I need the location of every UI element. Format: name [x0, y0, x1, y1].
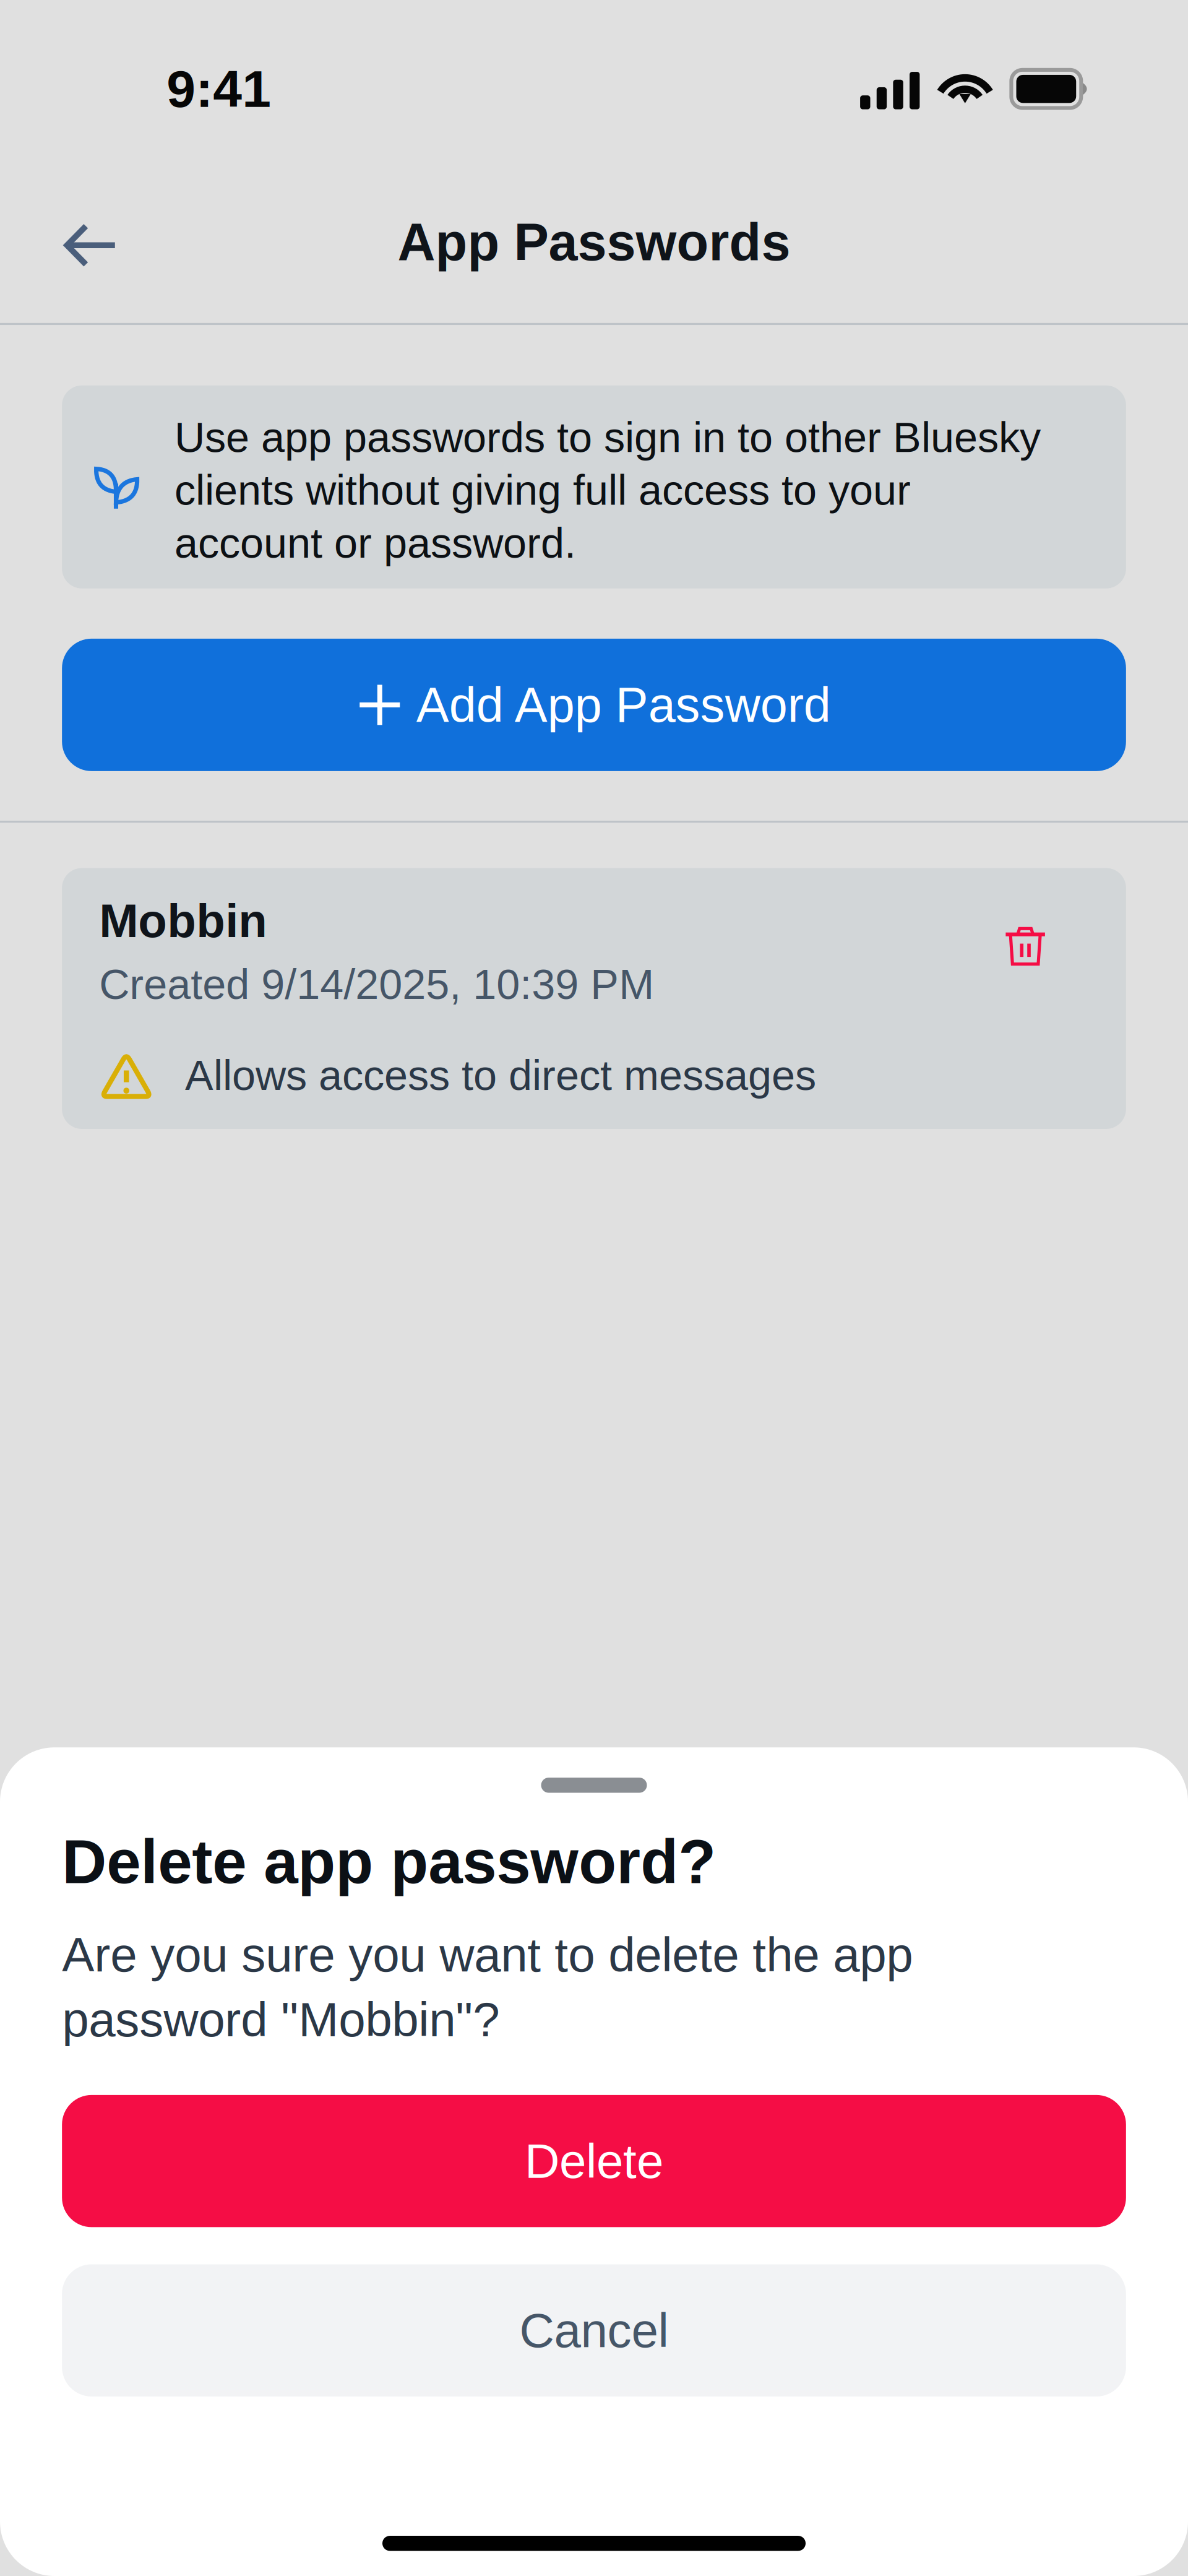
button[interactable]: Add App Password [62, 639, 1126, 771]
staticText: Add App Password [416, 677, 831, 732]
staticText: Allows access to direct messages [185, 1052, 816, 1099]
staticText: Delete app password? [62, 1827, 716, 1896]
button[interactable]: Delete [62, 2095, 1126, 2227]
staticText: Delete [525, 2134, 663, 2188]
staticText: Are you sure you want to delete the app … [62, 1928, 913, 2047]
staticText: App Passwords [398, 213, 790, 271]
staticText: Use app passwords to sign in to other Bl… [174, 414, 1041, 567]
button[interactable]: Cancel [62, 2264, 1126, 2397]
staticText: 9:41 [167, 60, 271, 118]
staticText: Created 9/14/2025, 10:39 PM [99, 961, 654, 1008]
staticText: Cancel [519, 2303, 669, 2357]
button[interactable]: Delete app password [983, 894, 1089, 1004]
button[interactable]: Back [0, 179, 197, 322]
staticText: Mobbin [99, 894, 267, 947]
